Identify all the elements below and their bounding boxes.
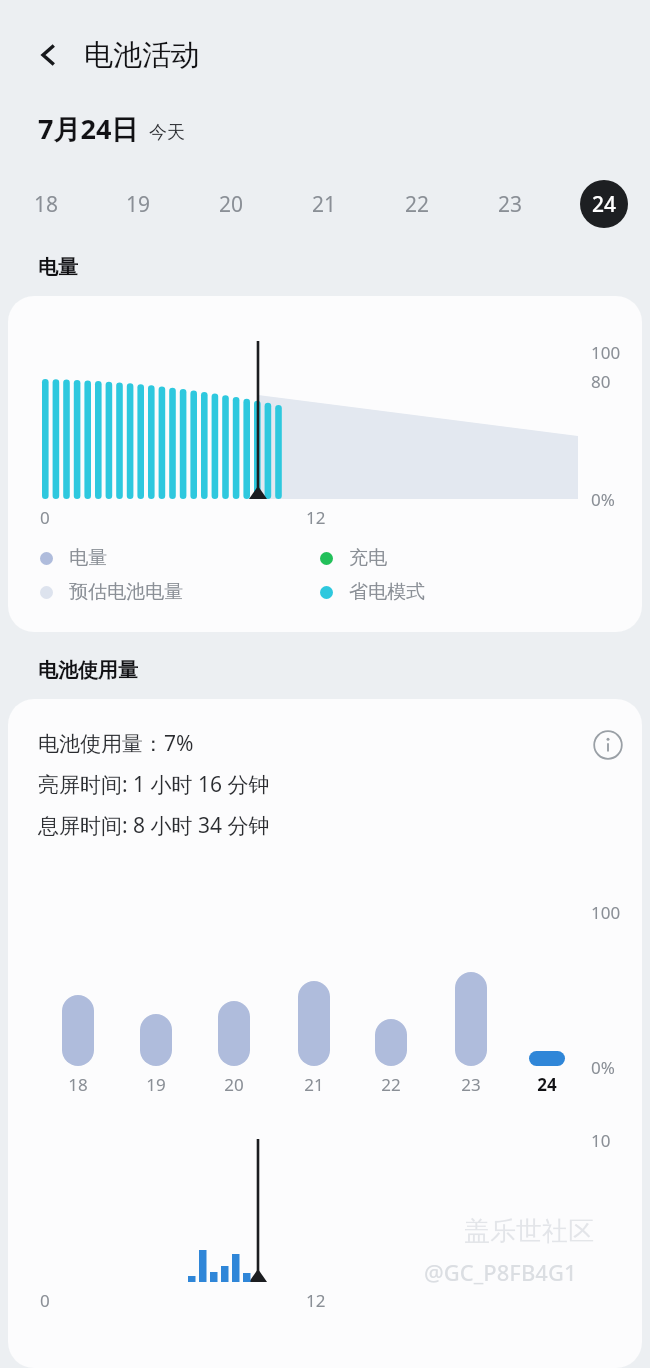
staticText: 21 — [300, 1073, 328, 1096]
staticText: 22 — [377, 1073, 405, 1096]
staticText: 19 — [126, 190, 151, 219]
staticText: 电池使用量 — [38, 658, 138, 683]
staticText: 21 — [312, 190, 337, 219]
staticText: 0% — [591, 1056, 615, 1079]
button[interactable]: Back — [26, 32, 72, 78]
button[interactable]: 23 — [464, 175, 557, 233]
button[interactable]: 100 — [8, 296, 642, 632]
staticText: 充电 — [349, 546, 387, 570]
staticText: 电池使用量：7% — [38, 729, 194, 758]
staticText: 电量 — [69, 546, 107, 570]
staticText: 亮屏时间: 1 小时 16 分钟 — [38, 770, 270, 799]
staticText: 19 — [142, 1073, 170, 1096]
button[interactable]: 22 — [371, 175, 464, 233]
staticText: 18 — [34, 190, 59, 219]
staticText: 80 — [591, 370, 611, 393]
staticText: 12 — [306, 1289, 326, 1312]
staticText: 息屏时间: 8 小时 34 分钟 — [38, 811, 270, 840]
staticText: 10 — [591, 1129, 611, 1152]
staticText: 7月24日 — [38, 110, 139, 147]
staticText: 20 — [220, 1073, 248, 1096]
button[interactable]: 20 — [185, 175, 278, 233]
staticText: 盖乐世社区 — [464, 1215, 594, 1248]
staticText: 22 — [405, 190, 430, 219]
staticText: 24 — [533, 1073, 561, 1096]
staticText: 预估电池电量 — [69, 580, 183, 604]
staticText: @GC_P8FB4G1 — [424, 1257, 577, 1287]
staticText: 23 — [457, 1073, 485, 1096]
staticText: 20 — [219, 190, 244, 219]
button[interactable]: 19 — [92, 175, 185, 233]
staticText: 今天 — [149, 121, 185, 144]
staticText: 电池活动 — [84, 37, 200, 74]
button[interactable]: 24 — [557, 175, 650, 233]
staticText: 23 — [498, 190, 523, 219]
staticText: 省电模式 — [349, 580, 425, 604]
button[interactable]: Info — [584, 721, 632, 769]
staticText: 电量 — [38, 255, 78, 280]
staticText: 100 — [591, 901, 621, 924]
staticText: 0 — [40, 506, 50, 529]
staticText: 0 — [40, 1289, 50, 1312]
staticText: 12 — [306, 506, 326, 529]
button[interactable]: 21 — [278, 175, 371, 233]
staticText: 100 — [591, 341, 621, 364]
button[interactable]: 18 — [0, 175, 92, 233]
staticText: 24 — [592, 190, 617, 219]
staticText: 18 — [64, 1073, 92, 1096]
staticText: 0% — [591, 488, 615, 511]
